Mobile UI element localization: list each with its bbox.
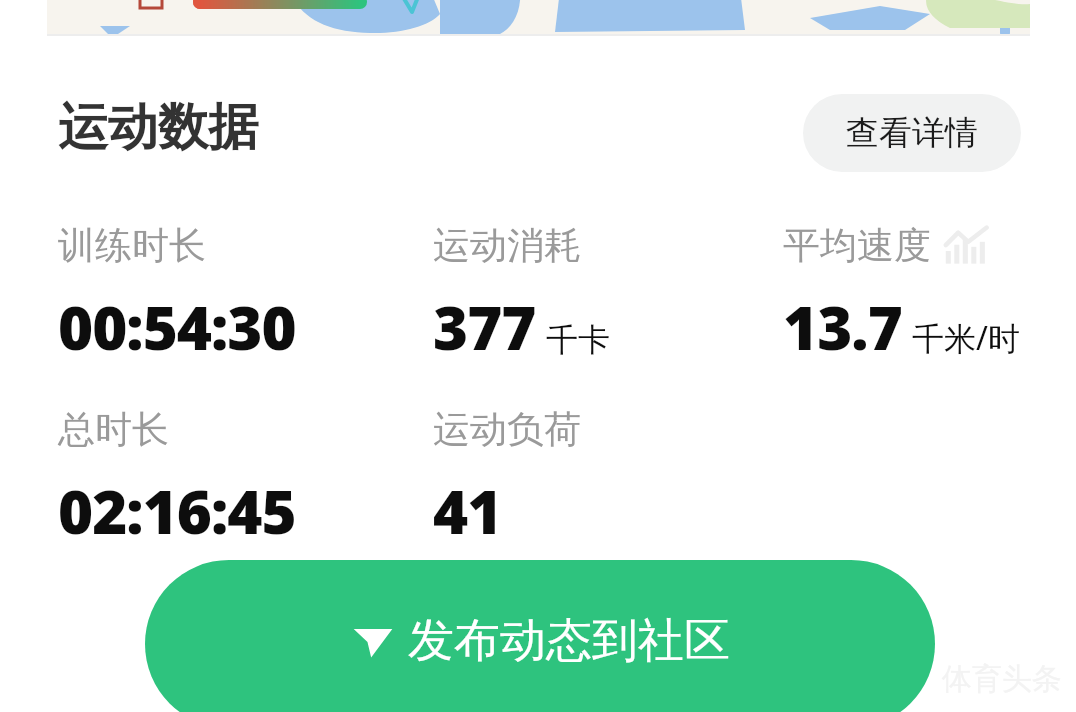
staticText: 00:54:30	[58, 286, 296, 368]
staticText: 运动消耗	[433, 222, 581, 269]
staticText: 体育头条	[942, 660, 1062, 698]
staticText: 发布动态到社区	[408, 612, 730, 670]
staticText: 训练时长	[58, 222, 206, 269]
staticText: 千卡	[546, 320, 610, 360]
staticText: 千米/时	[912, 316, 1020, 360]
staticText: 运动数据	[58, 96, 258, 159]
staticText: 02:16:45	[58, 470, 296, 552]
staticText: 13.7	[783, 286, 902, 368]
staticText: 查看详情	[846, 112, 978, 154]
staticText: 377	[433, 286, 536, 368]
staticText: 总时长	[58, 406, 169, 453]
button[interactable]: 查看详情	[803, 94, 1021, 172]
button[interactable]: Send	[145, 560, 935, 712]
staticText: 41	[433, 470, 502, 552]
other: Send	[350, 618, 396, 664]
staticText: 运动负荷	[433, 406, 581, 453]
staticText: 平均速度	[783, 222, 931, 269]
